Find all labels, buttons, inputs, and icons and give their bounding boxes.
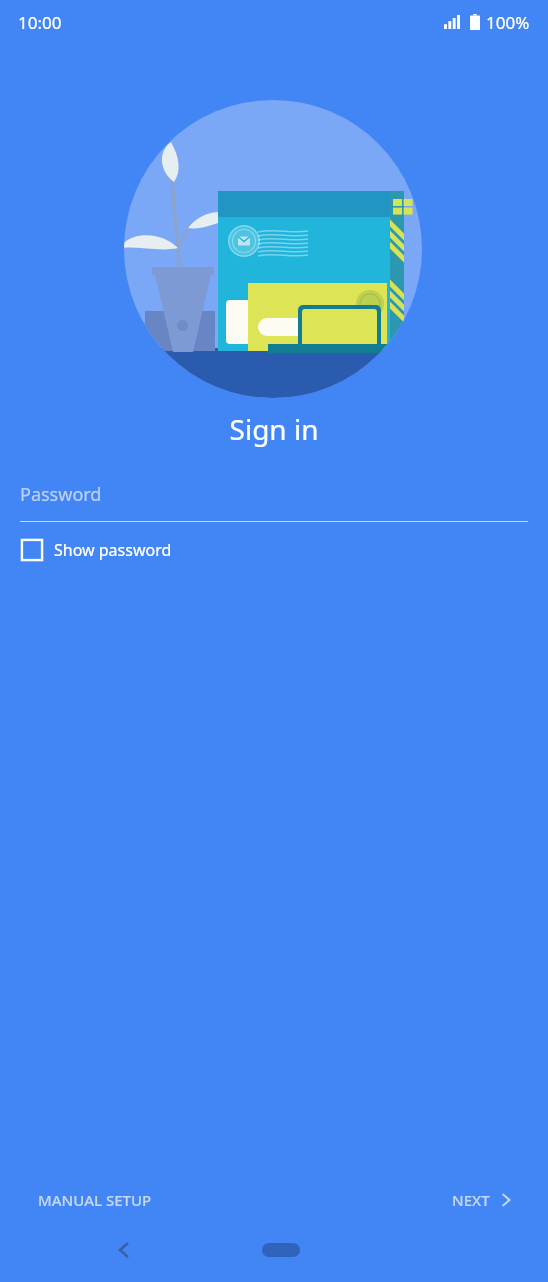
button[interactable]: Back bbox=[104, 1230, 144, 1270]
staticText: NEXT bbox=[452, 1190, 490, 1210]
staticText: MANUAL SETUP bbox=[38, 1190, 152, 1210]
button[interactable]: Home bbox=[262, 1243, 300, 1257]
button[interactable]: NEXT bbox=[444, 1182, 522, 1218]
staticText: Show password bbox=[54, 539, 172, 561]
button[interactable]: MANUAL SETUP bbox=[26, 1182, 164, 1218]
staticText: 10:00 bbox=[18, 11, 62, 34]
staticText: Password bbox=[20, 482, 102, 507]
staticText: 100% bbox=[486, 11, 530, 34]
staticText: Sign in bbox=[0, 410, 548, 448]
button[interactable]: Show password bbox=[20, 538, 172, 562]
button[interactable]: Password bbox=[20, 482, 528, 522]
